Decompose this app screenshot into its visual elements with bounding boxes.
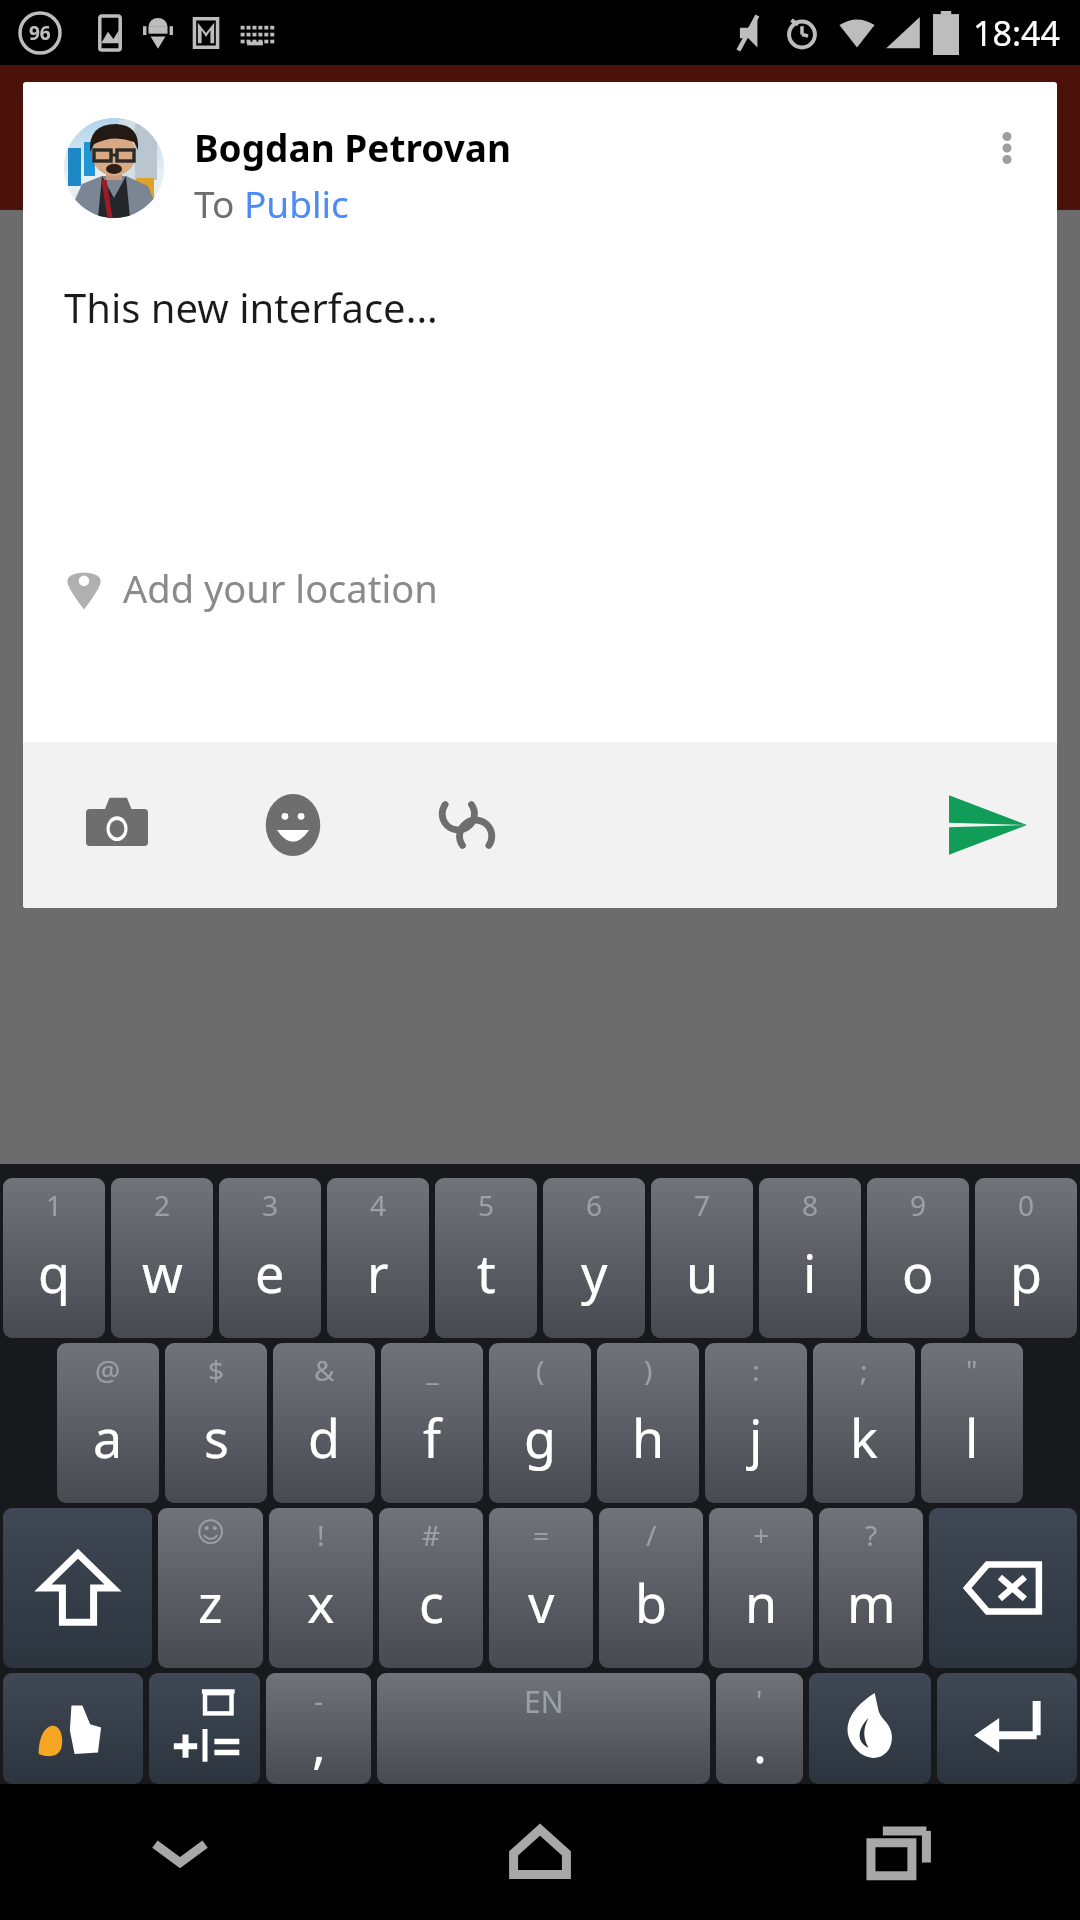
button[interactable]: ☺ (158, 1508, 263, 1668)
button[interactable]: Add photo (69, 777, 165, 873)
button[interactable]: ! (269, 1508, 373, 1668)
button[interactable]: Attach link (419, 777, 515, 873)
button[interactable]: Backspace (929, 1508, 1077, 1668)
staticText: # (422, 1516, 441, 1554)
button[interactable]: & (273, 1343, 375, 1503)
staticText: k (850, 1402, 878, 1473)
staticText: e (255, 1237, 285, 1308)
staticText: = (533, 1516, 550, 1554)
button[interactable]: - (266, 1673, 371, 1784)
staticText: ' (756, 1681, 763, 1719)
button[interactable]: Send (933, 770, 1043, 880)
button[interactable]: 6 (543, 1178, 645, 1338)
staticText: . (753, 1707, 767, 1778)
staticText: c (419, 1567, 444, 1638)
button[interactable]: $ (165, 1343, 267, 1503)
button[interactable]: 8 (759, 1178, 861, 1338)
staticText: j (749, 1402, 763, 1473)
button[interactable]: _ (381, 1343, 483, 1503)
button[interactable]: @ (57, 1343, 159, 1503)
staticText: 3 (262, 1186, 279, 1224)
button[interactable]: Hide keyboard (0, 1784, 360, 1920)
staticText: ) (644, 1351, 653, 1389)
staticText: b (635, 1567, 667, 1638)
staticText: h (632, 1402, 665, 1473)
button[interactable]: Add your location (23, 546, 1057, 630)
staticText: 18:44 (973, 10, 1060, 56)
staticText: l (965, 1402, 979, 1473)
staticText: f (423, 1402, 441, 1473)
staticText: i (803, 1237, 817, 1308)
button[interactable]: # (379, 1508, 483, 1668)
staticText: @ (95, 1351, 121, 1389)
button[interactable]: 9 (867, 1178, 969, 1338)
button[interactable]: Add emoji (245, 777, 341, 873)
staticText: 6 (586, 1186, 603, 1224)
button[interactable]: More options (977, 118, 1037, 178)
staticText: 96 (29, 20, 51, 46)
button[interactable]: Home (360, 1784, 720, 1920)
staticText: 1 (46, 1186, 63, 1224)
button[interactable]: Space (377, 1673, 710, 1784)
staticText: Bogdan Petrovan (194, 122, 511, 172)
staticText: s (204, 1402, 229, 1473)
staticText: + (753, 1516, 770, 1554)
staticText: & (314, 1351, 335, 1389)
staticText: - (314, 1681, 324, 1719)
staticText: n (745, 1567, 778, 1638)
staticText: 5 (478, 1186, 495, 1224)
button[interactable]: Shift (3, 1508, 152, 1668)
button[interactable]: 7 (651, 1178, 753, 1338)
staticText: $ (208, 1351, 225, 1389)
button[interactable]: 5 (435, 1178, 537, 1338)
staticText: y (581, 1237, 608, 1308)
button[interactable]: ' (716, 1673, 803, 1784)
button[interactable]: 4 (327, 1178, 429, 1338)
staticText: p (1010, 1237, 1042, 1308)
staticText: To Public (194, 178, 349, 228)
button[interactable] (64, 118, 164, 218)
button[interactable]: 0 (975, 1178, 1077, 1338)
button[interactable]: Swipe input (3, 1673, 143, 1784)
button[interactable]: / (599, 1508, 703, 1668)
staticText: x (307, 1567, 335, 1638)
button[interactable]: Symbols (149, 1673, 260, 1784)
button[interactable]: ) (597, 1343, 699, 1503)
button[interactable]: 2 (111, 1178, 213, 1338)
staticText: / (646, 1516, 657, 1554)
button[interactable]: Recents (720, 1784, 1080, 1920)
button[interactable]: ( (489, 1343, 591, 1503)
staticText: This new interface... (64, 280, 438, 334)
button[interactable]: ; (813, 1343, 915, 1503)
staticText: g (524, 1402, 556, 1473)
staticText: 9 (910, 1186, 927, 1224)
staticText: 2 (154, 1186, 171, 1224)
button[interactable]: 3 (219, 1178, 321, 1338)
staticText: ; (860, 1351, 868, 1389)
staticText: " (966, 1351, 978, 1389)
staticText: r (367, 1237, 389, 1308)
button[interactable]: : (705, 1343, 807, 1503)
button[interactable]: 1 (3, 1178, 105, 1338)
staticText: ? (865, 1516, 878, 1554)
staticText: _ (426, 1351, 439, 1389)
button[interactable]: Voice input (809, 1673, 931, 1784)
staticText: 8 (802, 1186, 819, 1224)
staticText: m (847, 1567, 896, 1638)
button[interactable]: = (489, 1508, 593, 1668)
staticText: t (477, 1237, 496, 1308)
button[interactable]: " (921, 1343, 1023, 1503)
staticText: ( (536, 1351, 545, 1389)
staticText: : (752, 1351, 760, 1389)
button[interactable]: ? (819, 1508, 923, 1668)
staticText: ☺ (196, 1516, 226, 1549)
staticText: u (686, 1237, 719, 1308)
button[interactable]: Enter (937, 1673, 1077, 1784)
staticText: a (93, 1402, 123, 1473)
button[interactable]: + (709, 1508, 813, 1668)
staticText: , (312, 1707, 326, 1778)
staticText: d (308, 1402, 340, 1473)
staticText: 0 (1018, 1186, 1035, 1224)
staticText: w (142, 1237, 183, 1308)
staticText: 7 (694, 1186, 711, 1224)
